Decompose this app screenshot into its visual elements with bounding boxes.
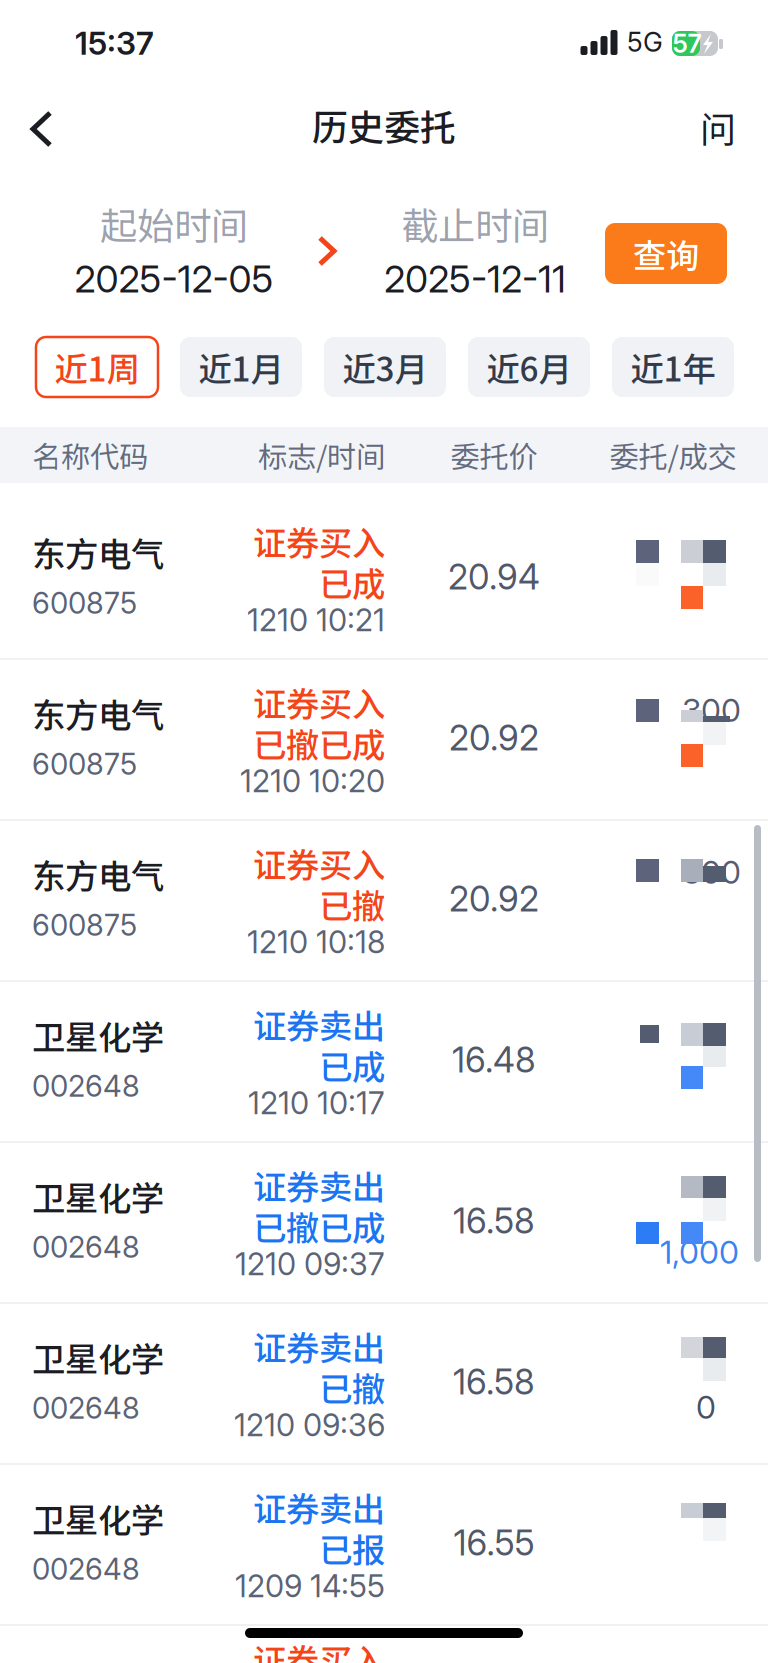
staticText: 近6月 — [486, 343, 571, 391]
staticText: 已成 — [319, 1041, 385, 1089]
staticText: 已撤 — [319, 880, 385, 928]
staticText: 名称代码 — [32, 434, 148, 476]
staticText: 15:37 — [75, 24, 154, 62]
staticText: 2025-12-11 — [384, 256, 566, 302]
staticText: 1,000 — [660, 1233, 739, 1271]
staticText: 近1年 — [630, 343, 715, 391]
staticText: 16.58 — [453, 1200, 535, 1242]
button[interactable]: 起始时间 — [48, 199, 300, 299]
staticText: 1210 10:18 — [247, 923, 385, 960]
button[interactable]: Back — [0, 91, 72, 171]
staticText: 1210 10:17 — [248, 1084, 385, 1121]
staticText: 近1周 — [54, 343, 139, 391]
staticText: 1210 10:20 — [240, 762, 385, 799]
button[interactable]: Help — [682, 87, 754, 167]
staticText: 证券买入 — [253, 517, 385, 565]
staticText: 20.92 — [449, 878, 539, 920]
staticText: 16.58 — [453, 1361, 535, 1403]
staticText: 卫星化学 — [32, 1333, 164, 1381]
button[interactable]: 近1月 — [180, 337, 302, 397]
staticText: 5G — [627, 26, 663, 58]
button[interactable]: 截止时间 — [349, 199, 601, 299]
staticText: 查询 — [633, 229, 699, 278]
staticText: 300 — [682, 691, 741, 729]
button[interactable]: 查询 — [605, 223, 727, 284]
button[interactable]: 卫星化学 — [0, 1304, 768, 1465]
staticText: 已报 — [319, 1524, 385, 1572]
staticText: 已撤已成 — [253, 719, 385, 767]
button[interactable]: 近1周 — [36, 337, 158, 397]
staticText: 002648 — [32, 1229, 140, 1265]
staticText: 东方电气 — [32, 689, 164, 737]
staticText: 卫星化学 — [32, 1172, 164, 1220]
staticText: 0 — [696, 1388, 716, 1426]
staticText: 近3月 — [342, 343, 427, 391]
staticText: 16.48 — [452, 1039, 536, 1081]
staticText: 002648 — [32, 1551, 140, 1587]
staticText: 委托价 — [450, 434, 537, 476]
staticText: 20.94 — [448, 556, 540, 598]
staticText: 1209 14:55 — [235, 1567, 385, 1604]
staticText: 证券买入 — [253, 839, 385, 887]
staticText: 东方电气 — [32, 850, 164, 898]
staticText: 截止时间 — [401, 196, 549, 250]
button[interactable]: 近1年 — [612, 337, 734, 397]
button[interactable]: 卫星化学 — [0, 1465, 768, 1626]
button[interactable]: 东方电气 — [0, 821, 768, 982]
staticText: 标志/时间 — [258, 434, 385, 476]
staticText: 16.55 — [453, 1522, 534, 1564]
staticText: 1210 10:21 — [247, 601, 385, 638]
staticText: 20.92 — [449, 717, 539, 759]
staticText: 问 — [700, 101, 736, 153]
staticText: 1210 09:36 — [234, 1406, 385, 1443]
staticText: 证券买入 — [253, 678, 385, 726]
button[interactable]: 近6月 — [468, 337, 590, 397]
staticText: 已撤 — [319, 1363, 385, 1411]
staticText: 卫星化学 — [32, 1494, 164, 1542]
staticText: 近1月 — [198, 343, 283, 391]
staticText: 证券卖出 — [253, 1483, 385, 1531]
staticText: 600875 — [32, 585, 137, 621]
staticText: 002648 — [32, 1390, 140, 1426]
staticText: 600875 — [32, 907, 137, 943]
staticText: 历史委托 — [312, 99, 456, 151]
button[interactable]: Swap date range — [312, 232, 352, 288]
staticText: 已撤已成 — [253, 1202, 385, 1250]
staticText: 57 — [672, 28, 701, 59]
staticText: 卫星化学 — [32, 1011, 164, 1059]
staticText: 已成 — [319, 558, 385, 606]
staticText: 300 — [682, 853, 741, 891]
staticText: 东方电气 — [32, 528, 164, 576]
button[interactable]: 卫星化学 — [0, 982, 768, 1143]
button[interactable]: 东方电气 — [0, 499, 768, 660]
staticText: 600875 — [32, 746, 137, 782]
staticText: 1210 09:37 — [235, 1245, 385, 1282]
staticText: 委托/成交 — [609, 434, 736, 476]
button[interactable]: 近3月 — [324, 337, 446, 397]
button[interactable]: 卫星化学 — [0, 1143, 768, 1304]
staticText: 证券卖出 — [253, 1000, 385, 1048]
staticText: 2025-12-05 — [74, 256, 273, 302]
staticText: 证券卖出 — [253, 1322, 385, 1370]
staticText: 002648 — [32, 1068, 140, 1104]
button[interactable]: 东方电气 — [0, 660, 768, 821]
staticText: 证券买入 — [253, 1635, 385, 1663]
staticText: 起始时间 — [100, 196, 248, 250]
staticText: 证券卖出 — [253, 1161, 385, 1209]
